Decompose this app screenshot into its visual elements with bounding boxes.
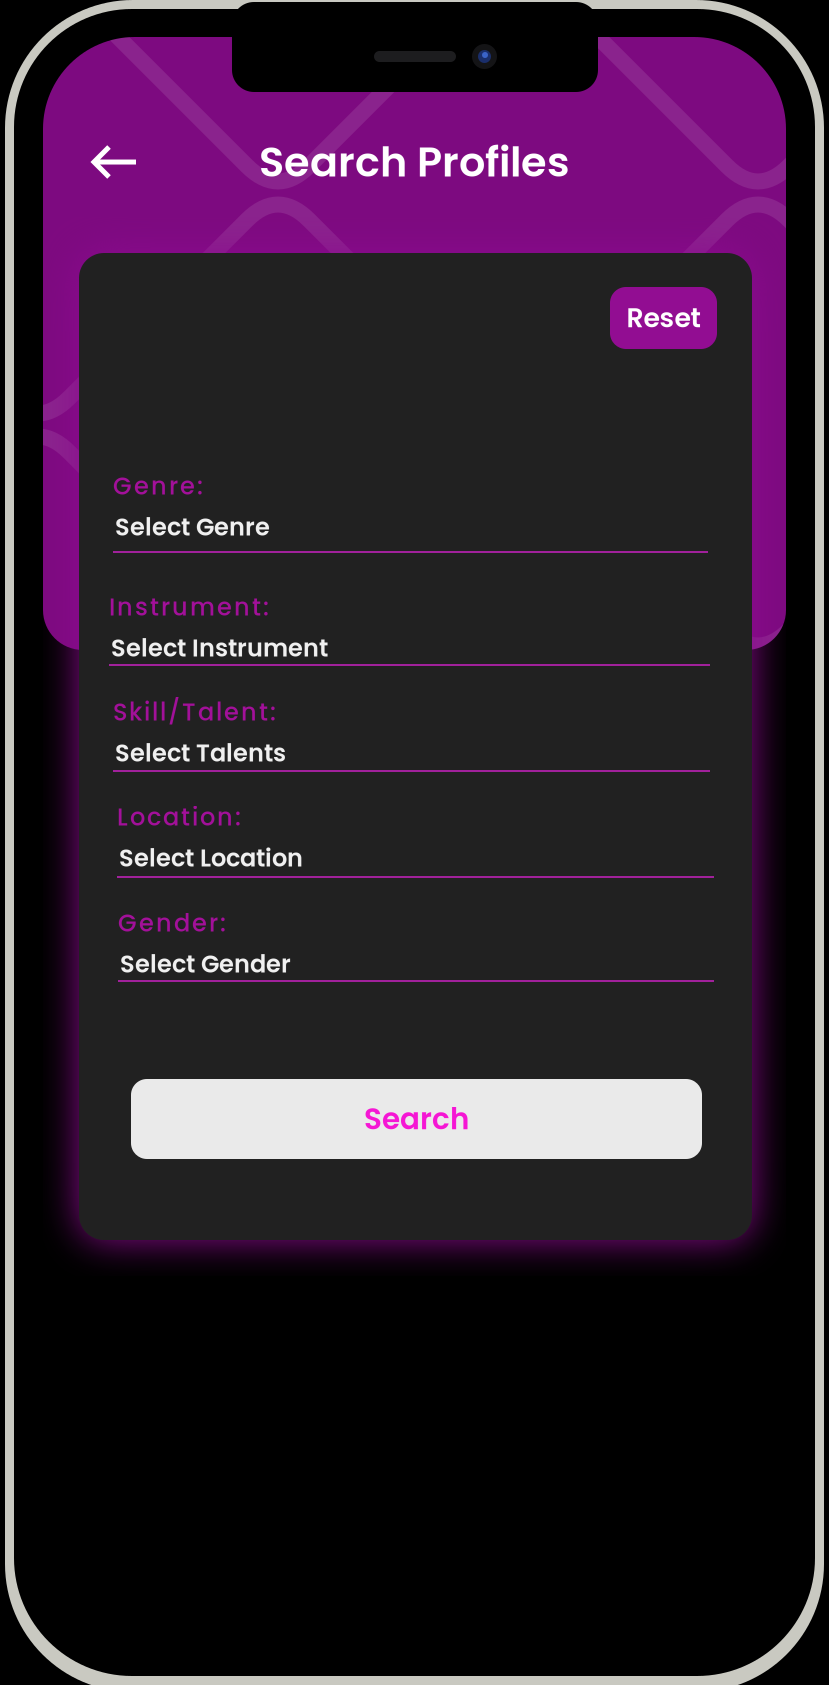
button[interactable]: Search bbox=[131, 1079, 702, 1159]
staticText: Select Location bbox=[119, 841, 303, 875]
staticText: I n s t r u m e n t : bbox=[109, 590, 269, 624]
staticText: Search bbox=[364, 1098, 469, 1140]
staticText: Select Instrument bbox=[111, 631, 328, 665]
staticText: Select Genre bbox=[115, 510, 270, 544]
staticText: L o c a t i o n : bbox=[117, 800, 241, 834]
button[interactable]: Reset bbox=[610, 287, 717, 349]
staticText: Select Talents bbox=[115, 736, 286, 770]
staticText: G e n d e r : bbox=[118, 906, 226, 940]
staticText: S k i l l / T a l e n t : bbox=[113, 695, 276, 729]
staticText: Reset bbox=[626, 299, 700, 337]
staticText: Search Profiles bbox=[259, 133, 570, 191]
staticText: Select Gender bbox=[120, 947, 291, 981]
staticText: G e n r e : bbox=[113, 469, 203, 503]
button[interactable]: Back bbox=[69, 125, 161, 199]
